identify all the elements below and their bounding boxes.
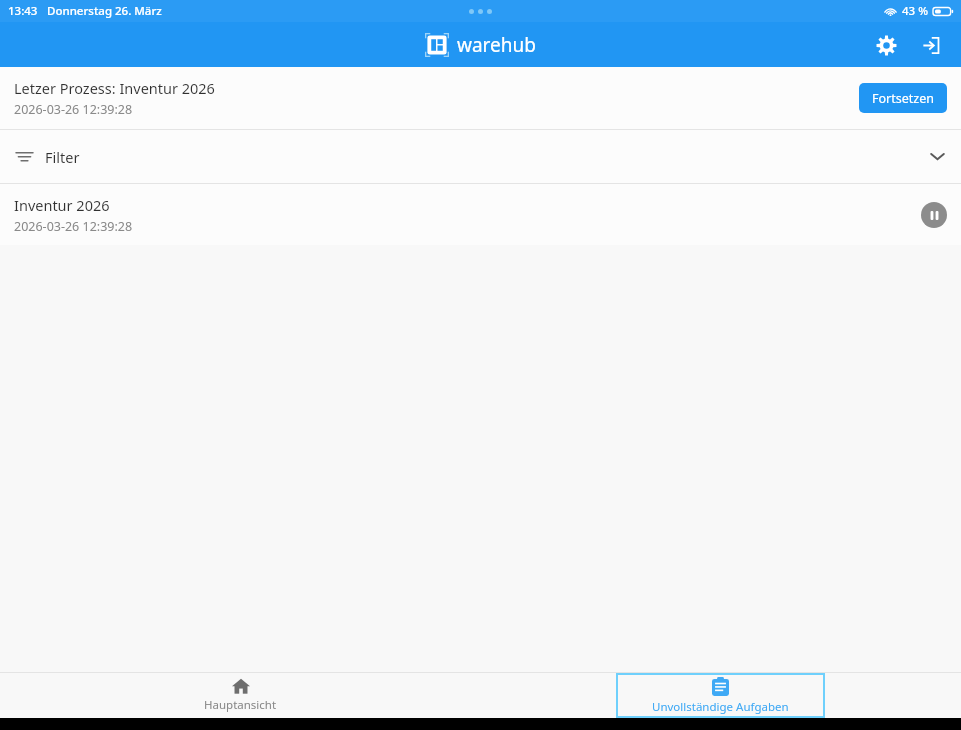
button[interactable]: Settings xyxy=(869,28,903,62)
button[interactable]: Hauptansicht xyxy=(0,673,480,718)
staticText: Fortsetzen xyxy=(872,90,934,107)
staticText: Filter xyxy=(45,147,80,167)
button[interactable]: Letzer Prozess: Inventur 2026 xyxy=(0,67,961,129)
button[interactable]: Inventur 2026 xyxy=(0,184,961,245)
staticText: Inventur 2026 xyxy=(14,195,110,215)
staticText: Letzer Prozess: Inventur 2026 xyxy=(14,78,215,98)
staticText: 2026-03-26 12:39:28 xyxy=(14,218,133,235)
button[interactable]: Pause xyxy=(921,202,947,228)
staticText: Unvollständige Aufgaben xyxy=(652,699,789,715)
staticText: Hauptansicht xyxy=(204,697,277,713)
staticText: 43 % xyxy=(902,3,928,19)
button[interactable]: Unvollständige Aufgaben xyxy=(616,673,825,718)
staticText: 13:43 xyxy=(8,3,38,19)
staticText: Donnerstag 26. März xyxy=(47,3,162,19)
button[interactable]: Logout xyxy=(913,28,947,62)
staticText: warehub xyxy=(457,32,536,58)
button[interactable]: Filter xyxy=(0,130,961,183)
staticText: 2026-03-26 12:39:28 xyxy=(14,101,133,118)
button[interactable]: Fortsetzen xyxy=(859,83,947,113)
